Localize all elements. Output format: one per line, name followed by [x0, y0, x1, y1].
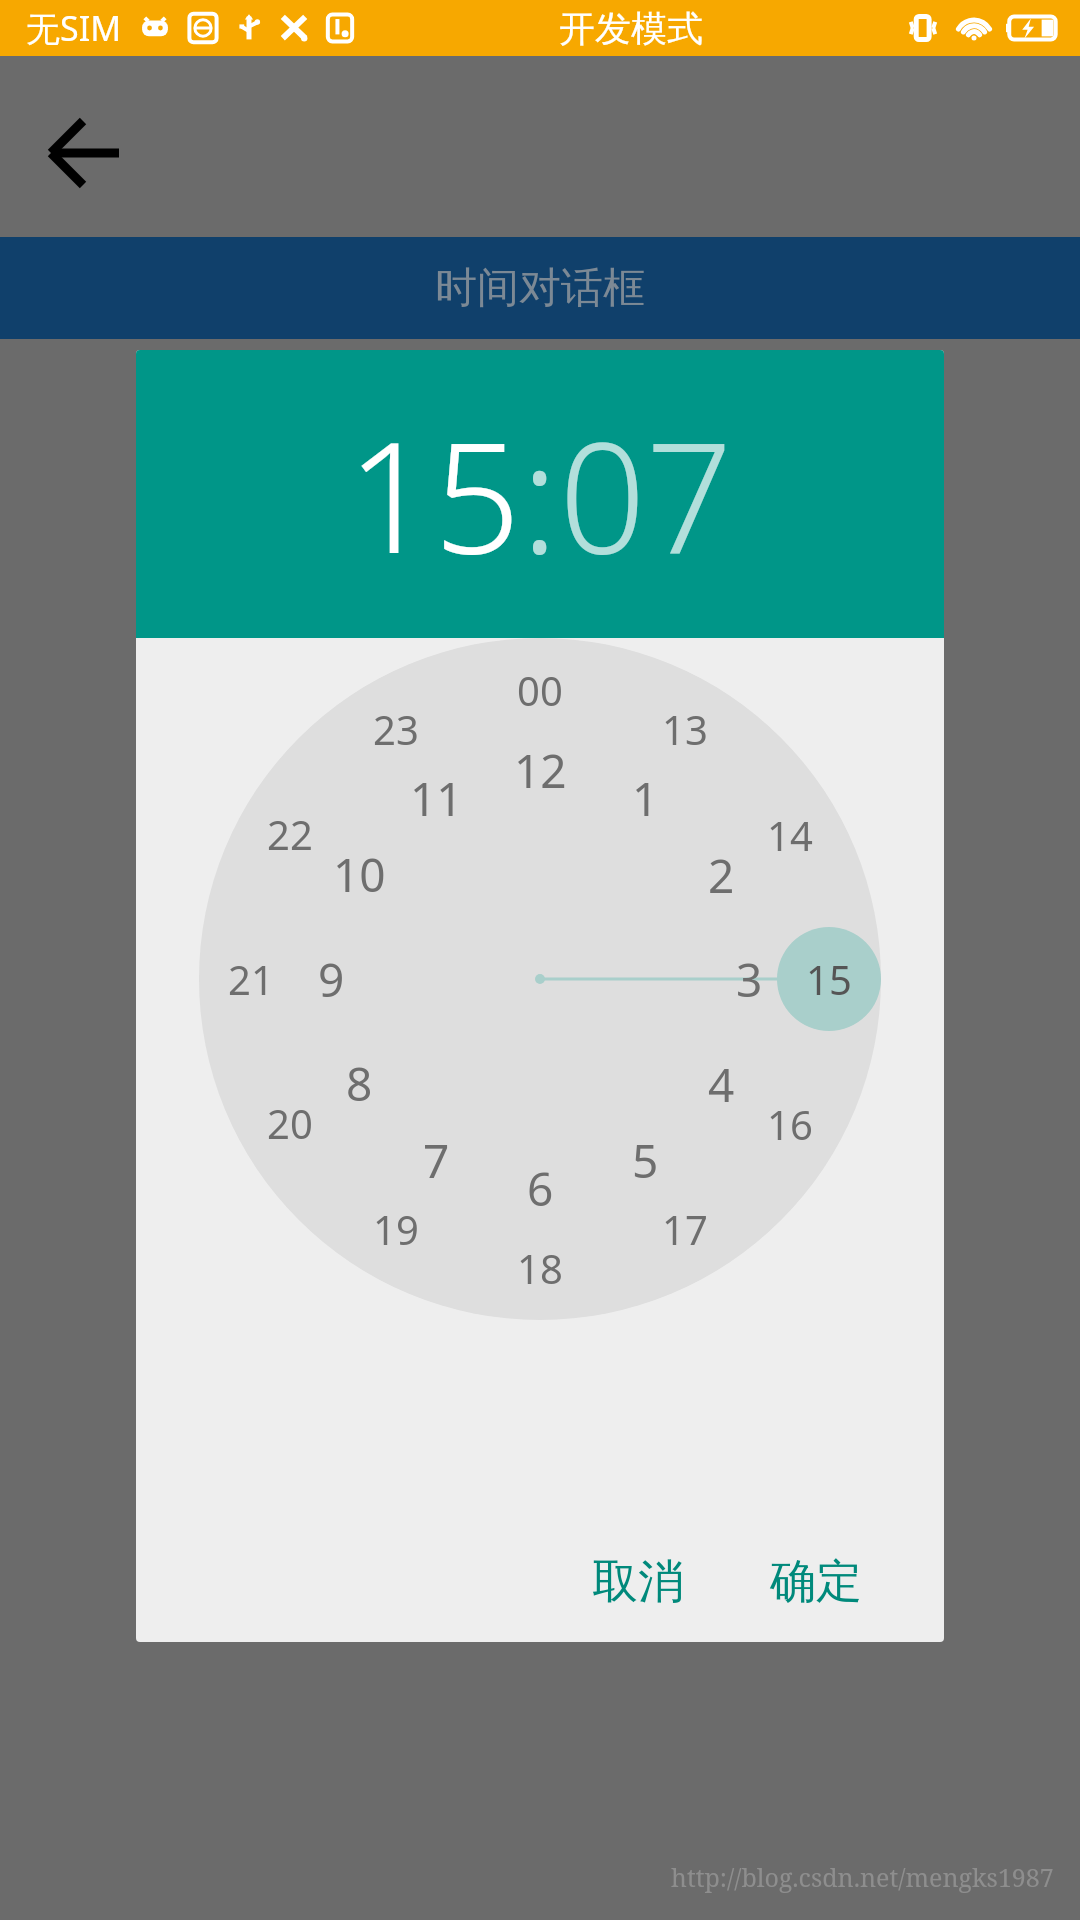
staticText: 3: [736, 948, 763, 1011]
staticText: 19: [373, 1202, 419, 1256]
staticText: 9: [318, 948, 345, 1011]
button[interactable]: 00: [136, 638, 944, 1522]
staticText: 15: [806, 952, 852, 1006]
button[interactable]: 取消: [574, 1539, 702, 1625]
staticText: 18: [517, 1241, 563, 1295]
staticText: 00: [517, 663, 563, 717]
staticText: 无SIM: [26, 5, 122, 51]
staticText: 14: [767, 808, 813, 862]
staticText: 时间对话框: [435, 262, 645, 315]
staticText: 22: [267, 807, 313, 861]
button[interactable]: 确定: [752, 1539, 880, 1625]
staticText: 10: [333, 843, 386, 906]
staticText: 6: [527, 1157, 554, 1220]
staticText: 4: [708, 1053, 735, 1116]
staticText: 11: [410, 767, 463, 830]
staticText: 23: [373, 702, 419, 756]
staticText: 12: [514, 739, 567, 802]
staticText: 确定: [770, 1553, 862, 1611]
button[interactable]: 07: [559, 391, 733, 598]
button[interactable]: 15: [347, 391, 521, 598]
staticText: 8: [346, 1052, 373, 1115]
staticText: http://blog.csdn.net/mengks1987: [671, 1860, 1054, 1894]
staticText: 7: [423, 1129, 450, 1192]
staticText: 2: [708, 844, 735, 907]
staticText: 1: [632, 767, 659, 830]
staticText: :: [521, 391, 559, 598]
staticText: 取消: [592, 1553, 684, 1611]
staticText: 开发模式: [559, 6, 703, 51]
staticText: 13: [662, 702, 708, 756]
staticText: 21: [228, 952, 274, 1006]
staticText: 17: [662, 1202, 708, 1256]
button[interactable]: Back: [28, 96, 142, 210]
staticText: 16: [767, 1097, 813, 1151]
staticText: 20: [267, 1096, 313, 1150]
staticText: 5: [632, 1129, 659, 1192]
